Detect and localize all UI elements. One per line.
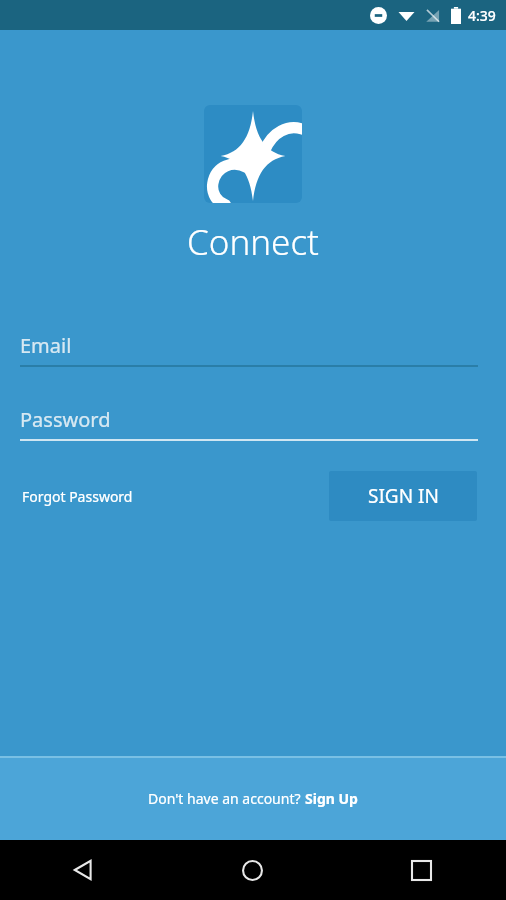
button[interactable]: Password xyxy=(20,399,478,441)
staticText: Forgot Password xyxy=(22,487,133,506)
button[interactable]: Recent apps xyxy=(337,840,506,900)
staticText: Don't have an account? xyxy=(148,789,305,808)
staticText: Connect xyxy=(187,218,319,266)
button[interactable]: Email xyxy=(20,325,478,367)
staticText: 4:39 xyxy=(468,6,496,25)
button[interactable]: Forgot Password xyxy=(20,481,135,512)
staticText: SIGN IN xyxy=(368,483,439,509)
other: Connect logo xyxy=(204,105,302,203)
button[interactable]: Home xyxy=(168,840,337,900)
staticText: Sign Up xyxy=(305,789,358,808)
staticText: Email xyxy=(20,332,72,359)
button[interactable]: Back xyxy=(0,840,168,900)
button[interactable]: SIGN IN xyxy=(329,471,477,521)
staticText: Password xyxy=(20,406,111,433)
button[interactable]: Don't have an account? xyxy=(0,756,506,840)
